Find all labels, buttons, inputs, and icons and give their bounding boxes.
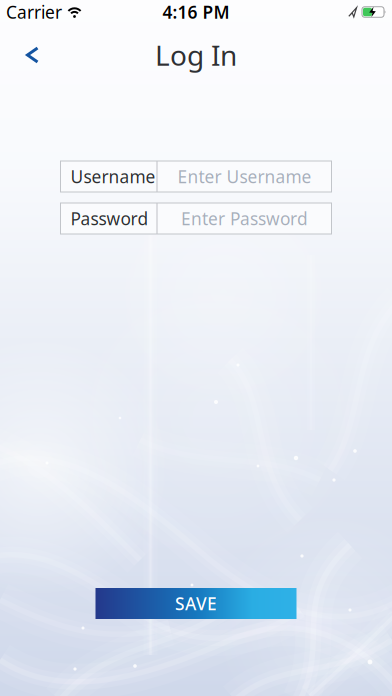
- staticText: 4:16 PM: [162, 0, 229, 23]
- button[interactable]: Username: [60, 161, 331, 192]
- staticText: Password: [70, 207, 148, 230]
- staticText: Username: [70, 165, 155, 188]
- staticText: Enter Password: [181, 207, 308, 230]
- staticText: Carrier: [6, 0, 62, 23]
- button[interactable]: SAVE: [95, 588, 296, 619]
- staticText: Log In: [155, 36, 237, 74]
- staticText: SAVE: [175, 592, 217, 615]
- button[interactable]: Back: [0, 44, 40, 65]
- button[interactable]: Password: [60, 203, 331, 234]
- staticText: Enter Username: [177, 165, 311, 188]
